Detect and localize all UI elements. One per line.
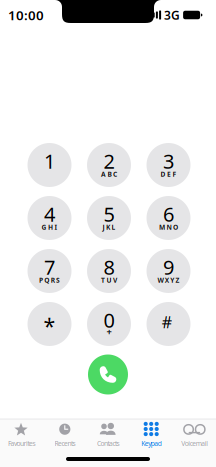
staticText: D: [160, 170, 165, 179]
staticText: E: [167, 170, 171, 179]
staticText: P: [39, 276, 43, 285]
staticText: 6: [163, 201, 174, 227]
staticText: F: [172, 170, 176, 179]
staticText: +: [106, 325, 111, 338]
staticText: G: [41, 223, 46, 232]
staticText: Voicemail: [181, 439, 208, 448]
staticText: Contacts: [97, 439, 119, 448]
staticText: 10:00: [8, 6, 44, 24]
staticText: Favourites: [8, 439, 36, 448]
staticText: 4: [44, 201, 55, 227]
staticText: S: [56, 276, 60, 285]
staticText: K: [106, 223, 110, 232]
button[interactable]: 1: [27, 143, 71, 187]
button[interactable]: Voicemail: [173, 420, 216, 450]
button[interactable]: 0: [87, 302, 131, 346]
staticText: W: [158, 276, 164, 285]
staticText: 3: [163, 148, 174, 174]
button[interactable]: 8: [87, 249, 131, 293]
button[interactable]: 9: [146, 249, 190, 293]
staticText: *: [43, 311, 55, 340]
staticText: I: [54, 223, 57, 232]
button[interactable]: 3: [146, 143, 190, 187]
staticText: O: [173, 223, 178, 232]
staticText: Y: [170, 276, 174, 285]
staticText: M: [159, 223, 165, 232]
button[interactable]: Keypad: [130, 420, 173, 450]
staticText: R: [51, 276, 55, 285]
staticText: 8: [103, 254, 114, 280]
staticText: #: [162, 311, 172, 333]
button[interactable]: 4: [27, 196, 71, 240]
staticText: 9: [163, 254, 174, 280]
button[interactable]: 2: [87, 143, 131, 187]
staticText: L: [111, 223, 115, 232]
button[interactable]: #: [146, 302, 190, 346]
staticText: Recents: [55, 439, 76, 448]
staticText: U: [106, 276, 111, 285]
button[interactable]: 6: [146, 196, 190, 240]
staticText: N: [166, 223, 171, 232]
staticText: 5: [103, 201, 114, 227]
staticText: A: [101, 170, 106, 179]
button[interactable]: Recents: [43, 420, 86, 450]
staticText: J: [102, 223, 104, 232]
button[interactable]: 5: [87, 196, 131, 240]
button[interactable]: 7: [27, 249, 71, 293]
staticText: H: [48, 223, 53, 232]
staticText: 3G: [164, 7, 180, 23]
staticText: T: [101, 276, 105, 285]
staticText: B: [107, 170, 111, 179]
staticText: C: [113, 170, 117, 179]
button[interactable]: Contacts: [86, 420, 130, 450]
button[interactable]: *: [27, 302, 71, 346]
staticText: Z: [175, 276, 179, 285]
staticText: 7: [44, 254, 55, 280]
staticText: 1: [44, 148, 55, 174]
button[interactable]: Call: [88, 354, 128, 394]
staticText: V: [113, 276, 117, 285]
staticText: Q: [44, 276, 49, 285]
button[interactable]: Favourites: [0, 420, 43, 450]
staticText: X: [165, 276, 169, 285]
staticText: 0: [103, 307, 114, 333]
staticText: Keypad: [141, 439, 162, 448]
staticText: 2: [103, 148, 114, 174]
